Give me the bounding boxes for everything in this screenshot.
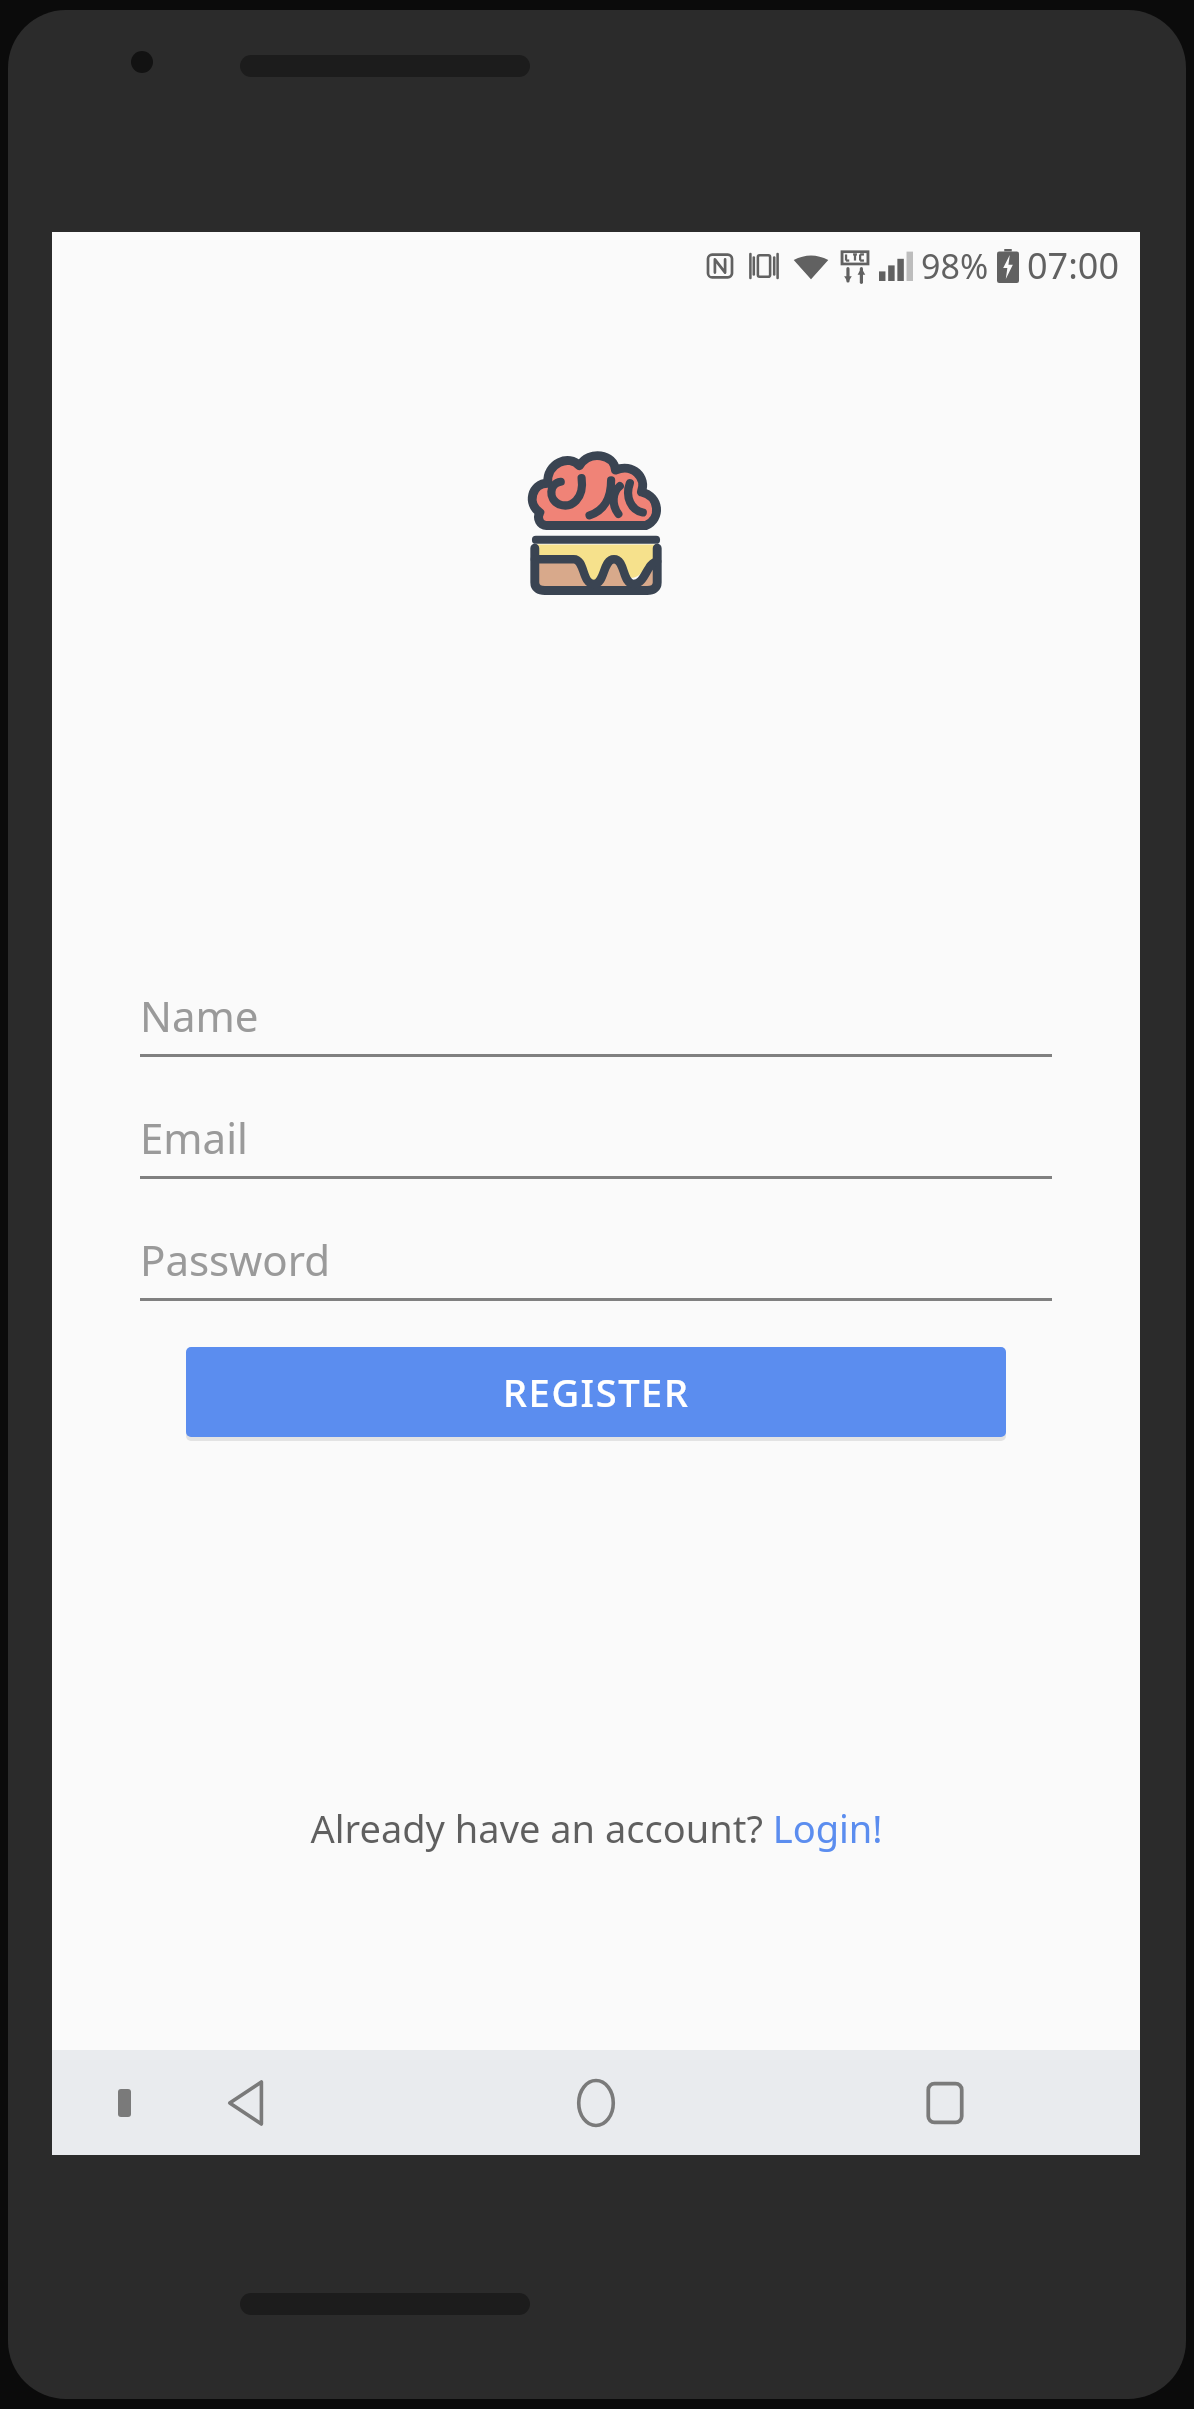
- button[interactable]: Recent apps: [885, 2050, 1005, 2155]
- button[interactable]: Input method: [118, 2089, 131, 2117]
- staticText: 98%: [921, 243, 989, 289]
- staticText: Email: [140, 1109, 248, 1166]
- button[interactable]: Password: [140, 1226, 1052, 1301]
- button[interactable]: REGISTER: [186, 1347, 1006, 1437]
- button[interactable]: Back: [187, 2050, 307, 2155]
- button[interactable]: Home: [536, 2050, 656, 2155]
- button[interactable]: Email: [140, 1104, 1052, 1179]
- staticText: Password: [140, 1231, 330, 1288]
- staticText: 07:00: [1027, 241, 1120, 290]
- button[interactable]: Already have an account? Login!: [298, 1794, 895, 1862]
- staticText: REGISTER: [503, 1366, 690, 1418]
- button[interactable]: Name: [140, 982, 1052, 1057]
- staticText: Already have an account? Login!: [310, 1802, 883, 1854]
- staticText: Name: [140, 987, 259, 1044]
